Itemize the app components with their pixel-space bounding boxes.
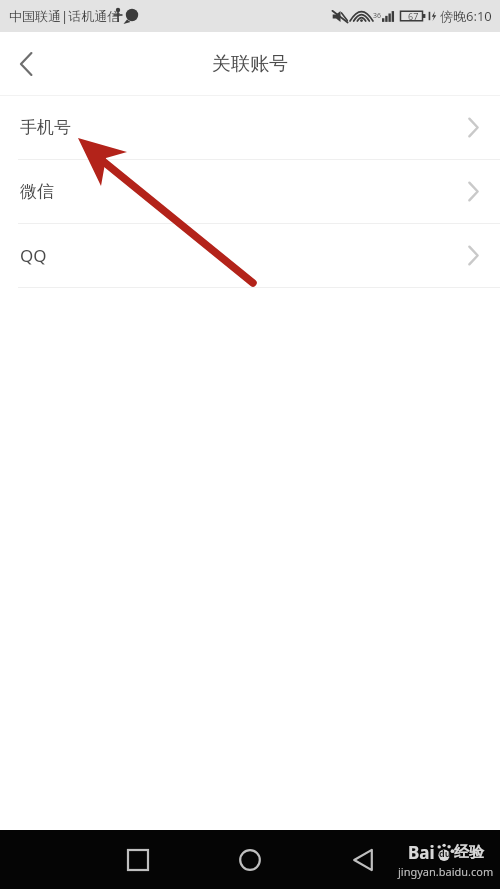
staticText: 中国联通|话机通信 — [9, 7, 121, 25]
button[interactable]: 手机号 — [0, 96, 500, 159]
staticText: 微信 — [20, 181, 54, 202]
staticText: jingyan.baidu.com — [398, 864, 494, 879]
staticText: QQ — [20, 244, 47, 267]
staticText: 傍晚6:10 — [440, 7, 492, 25]
button[interactable]: Home — [226, 836, 274, 884]
button[interactable]: Recents — [114, 836, 162, 884]
staticText: Bai — [408, 841, 435, 864]
staticText: 手机号 — [20, 117, 71, 138]
staticText: 67 — [408, 10, 419, 22]
button[interactable]: Back — [339, 836, 387, 884]
staticText: du — [439, 847, 451, 859]
staticText: 关联账号 — [212, 52, 288, 76]
staticText: 经验 — [454, 843, 484, 862]
staticText: 36 — [373, 11, 382, 21]
button[interactable]: QQ — [0, 224, 500, 287]
button[interactable]: Back — [0, 36, 52, 92]
button[interactable]: 微信 — [0, 160, 500, 223]
